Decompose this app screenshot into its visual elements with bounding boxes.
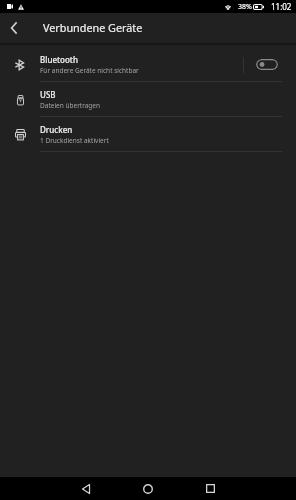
staticText: USB	[40, 89, 56, 100]
staticText: 1 Druckdienst aktiviert	[40, 136, 109, 145]
button[interactable]: Drucken	[0, 117, 296, 152]
button[interactable]: Back	[66, 477, 106, 500]
staticText: Bluetooth	[40, 54, 78, 65]
button[interactable]: Recents	[190, 477, 230, 500]
button[interactable]: Bluetooth toggle	[256, 59, 278, 70]
button[interactable]: Home	[128, 477, 168, 500]
button[interactable]: Bluetooth	[0, 47, 296, 82]
staticText: Verbundene Geräte	[43, 20, 143, 35]
staticText: 11:02	[271, 1, 292, 12]
staticText: Drucken	[40, 124, 73, 135]
button[interactable]: Back	[0, 13, 27, 42]
staticText: Dateien übertragen	[40, 101, 101, 110]
staticText: 38%	[238, 2, 252, 12]
button[interactable]: USB	[0, 82, 296, 117]
staticText: Für andere Geräte nicht sichtbar	[40, 66, 139, 75]
